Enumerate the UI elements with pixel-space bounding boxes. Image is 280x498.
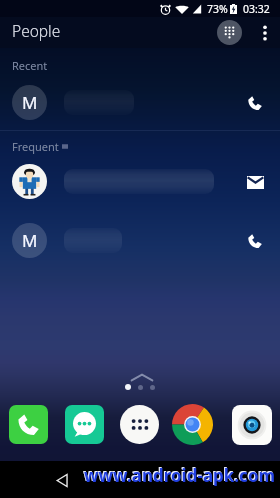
button[interactable]: All apps: [120, 405, 159, 444]
button[interactable]: Call: [236, 84, 274, 122]
button[interactable]: Email: [236, 163, 274, 201]
staticText: 03:32: [243, 2, 270, 16]
staticText: Frequent: [12, 139, 59, 154]
button[interactable]: M: [0, 73, 280, 132]
staticText: 73%: [207, 2, 228, 16]
button[interactable]: Camera: [232, 405, 272, 445]
button[interactable]: M: [0, 211, 280, 270]
button[interactable]: Phone: [9, 405, 48, 444]
staticText: www.android-apk.com: [83, 463, 275, 486]
button[interactable]: Chrome: [172, 404, 213, 445]
button[interactable]: Email: [0, 152, 280, 211]
button[interactable]: Messages: [65, 405, 104, 444]
staticText: M: [22, 229, 38, 252]
staticText: Recent: [12, 58, 48, 73]
button[interactable]: More options: [254, 22, 276, 44]
button[interactable]: Call: [236, 222, 274, 260]
button[interactable]: Dialpad: [217, 20, 242, 45]
button[interactable]: Back: [51, 469, 73, 491]
staticText: M: [22, 91, 38, 114]
staticText: People: [12, 20, 61, 41]
staticText: www.android-apk.com: [84, 464, 276, 487]
